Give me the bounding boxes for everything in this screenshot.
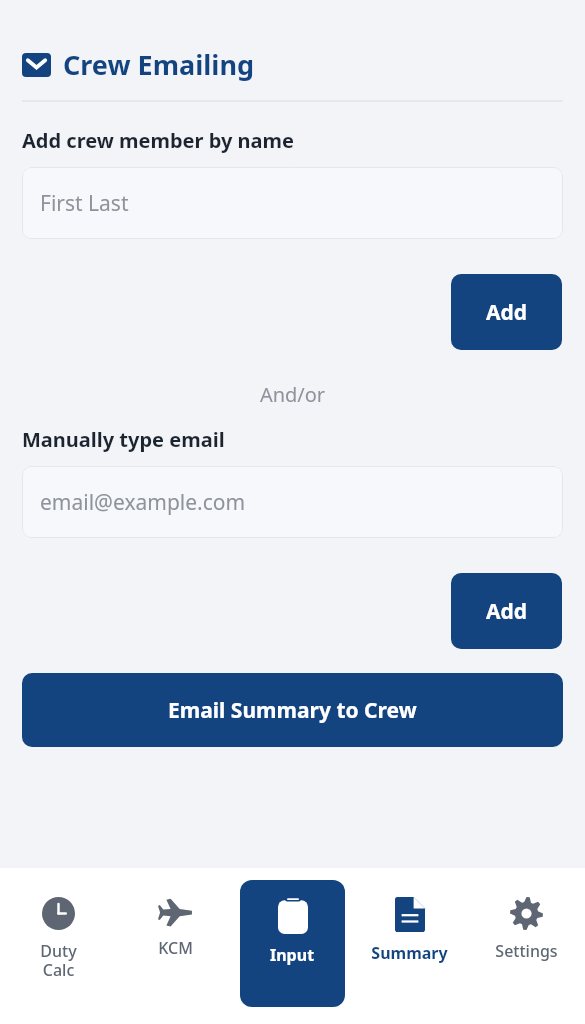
staticText: First Last bbox=[40, 189, 129, 218]
button[interactable]: email@example.com bbox=[22, 466, 563, 538]
button[interactable]: KCM bbox=[117, 868, 234, 1024]
button[interactable]: Settings bbox=[468, 868, 585, 1024]
staticText: Duty Calc bbox=[40, 940, 77, 981]
staticText: Summary bbox=[371, 942, 448, 964]
staticText: Manually type email bbox=[22, 426, 225, 453]
other: KCM bbox=[158, 897, 193, 927]
button[interactable]: Summary bbox=[351, 868, 468, 1024]
staticText: Add crew member by name bbox=[22, 127, 294, 154]
button[interactable]: Email Summary to Crew bbox=[22, 673, 563, 747]
button[interactable]: Add bbox=[451, 573, 562, 649]
other: Summary bbox=[395, 897, 425, 932]
staticText: KCM bbox=[158, 937, 193, 959]
staticText: Email Summary to Crew bbox=[168, 696, 417, 725]
button[interactable]: Duty Calc bbox=[0, 868, 117, 1024]
other: Duty Calc bbox=[42, 897, 75, 930]
staticText: Settings bbox=[495, 940, 558, 962]
staticText: Crew Emailing bbox=[63, 46, 254, 83]
staticText: Add bbox=[486, 597, 528, 626]
staticText: email@example.com bbox=[40, 488, 246, 517]
button[interactable]: Input bbox=[240, 880, 345, 1007]
staticText: Input bbox=[270, 944, 315, 966]
button[interactable]: Add bbox=[451, 274, 562, 350]
other: Settings bbox=[510, 897, 543, 930]
button[interactable]: First Last bbox=[22, 167, 563, 239]
staticText: Add bbox=[486, 298, 528, 327]
other: Input bbox=[278, 897, 308, 934]
staticText: And/or bbox=[0, 381, 585, 408]
